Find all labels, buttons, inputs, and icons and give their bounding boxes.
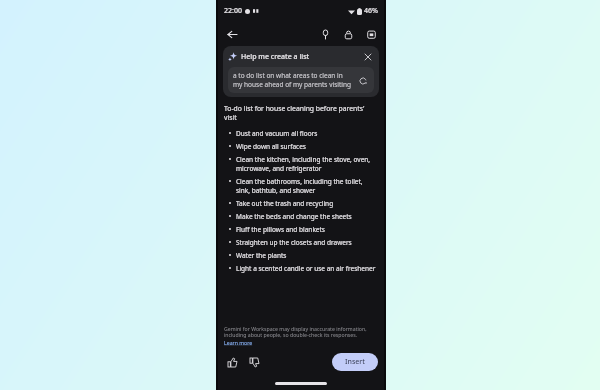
button[interactable]: Lock	[340, 26, 356, 42]
button[interactable]: a to do list on what areas to clean in m…	[228, 67, 374, 93]
staticText: 46%	[364, 6, 378, 16]
button[interactable]: Learn more	[224, 339, 253, 346]
staticText: Light a scented candle or use an air fre…	[236, 264, 378, 273]
staticText: a to do list on what areas to clean in m…	[233, 71, 352, 89]
staticText: Take out the trash and recycling	[236, 199, 378, 208]
button[interactable]: Insert	[332, 353, 378, 371]
staticText: Clean the bathrooms, including the toile…	[236, 177, 378, 195]
button[interactable]: Good response	[224, 354, 240, 370]
staticText: Wipe down all surfaces	[236, 142, 378, 151]
button[interactable]: Close	[361, 50, 374, 63]
button[interactable]: Back	[223, 25, 241, 43]
staticText: 22:00	[224, 6, 242, 16]
button[interactable]: Bad response	[246, 354, 262, 370]
staticText: Insert	[345, 357, 365, 367]
staticText: Gemini for Workspace may display inaccur…	[224, 325, 378, 339]
staticText: Clean the kitchen, including the stove, …	[236, 155, 378, 173]
button[interactable]: Regenerate	[356, 74, 369, 87]
staticText: Fluff the pillows and blankets	[236, 225, 378, 234]
staticText: Make the beds and change the sheets	[236, 212, 378, 221]
button[interactable]: Calendar	[363, 26, 379, 42]
staticText: Help me create a list	[241, 52, 310, 62]
button[interactable]: Attach	[317, 26, 333, 42]
staticText: Dust and vacuum all floors	[236, 129, 378, 138]
staticText: To-do list for house cleaning before par…	[224, 104, 378, 122]
staticText: Straighten up the closets and drawers	[236, 238, 378, 247]
staticText: Water the plants	[236, 251, 378, 260]
